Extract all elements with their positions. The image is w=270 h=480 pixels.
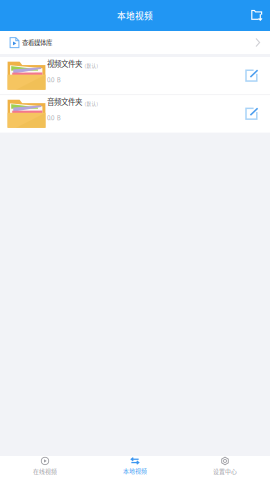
staticText: 视频文件夹 (47, 58, 82, 69)
staticText: 0.0 B (47, 77, 61, 84)
button[interactable]: 在线视频 (0, 456, 90, 480)
staticText: 本地视频 (117, 9, 153, 22)
button[interactable]: 查看媒体库 (0, 31, 270, 54)
staticText: (默认) (84, 62, 98, 69)
staticText: 查看媒体库 (22, 38, 52, 47)
staticText: 音频文件夹 (47, 96, 82, 107)
button[interactable]: 音频文件夹 (0, 95, 270, 133)
staticText: (默认) (84, 100, 98, 107)
staticText: 设置中心 (213, 467, 237, 476)
staticText: 本地视频 (123, 467, 147, 475)
staticText: 0.0 B (47, 115, 61, 122)
staticText: 在线视频 (33, 467, 57, 475)
button[interactable]: 本地视频 (90, 456, 180, 480)
button[interactable]: 视频文件夹 (0, 57, 270, 94)
button[interactable]: 设置中心 (180, 456, 270, 480)
button[interactable]: 导入文件夹 (243, 1, 270, 29)
